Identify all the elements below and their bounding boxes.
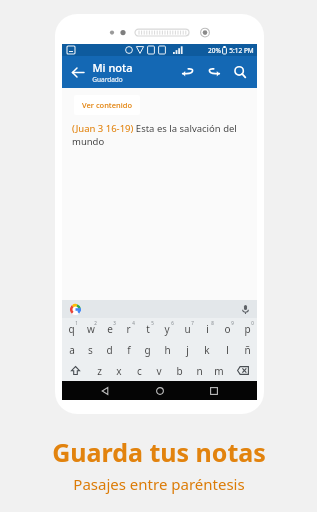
staticText: w (87, 322, 95, 336)
button[interactable]: 2 (81, 318, 100, 339)
button[interactable]: l (217, 339, 237, 360)
staticText: p (244, 322, 251, 336)
staticText: t (146, 322, 150, 336)
staticText: s (88, 343, 93, 357)
staticText: 6 (171, 320, 174, 326)
button[interactable]: Shift (62, 360, 89, 381)
staticText: o (224, 322, 231, 336)
button[interactable]: a (62, 339, 81, 360)
button[interactable]: k (197, 339, 217, 360)
button[interactable]: 0 (237, 318, 257, 339)
button[interactable]: j (177, 339, 197, 360)
staticText: 9 (231, 320, 234, 326)
button[interactable]: Back (62, 56, 92, 88)
button[interactable]: 1 (62, 318, 81, 339)
staticText: 5:12 PM (229, 46, 254, 55)
staticText: f (127, 343, 131, 357)
staticText: k (204, 343, 210, 357)
button[interactable]: 3 (100, 318, 119, 339)
staticText: n (196, 364, 203, 378)
button[interactable]: b (169, 360, 189, 381)
staticText: v (156, 364, 162, 378)
staticText: l (226, 343, 229, 357)
button[interactable]: Backspace (229, 360, 257, 381)
staticText: g (144, 343, 151, 357)
staticText: x (116, 364, 122, 378)
button[interactable]: s (81, 339, 100, 360)
button[interactable]: z (89, 360, 109, 381)
button[interactable]: n (189, 360, 209, 381)
button[interactable]: g (138, 339, 157, 360)
button[interactable]: f (119, 339, 138, 360)
staticText: Mi nota (92, 60, 133, 75)
button[interactable]: ñ (237, 339, 257, 360)
button[interactable]: 4 (119, 318, 138, 339)
staticText: 2 (94, 320, 97, 326)
button[interactable]: 8 (197, 318, 217, 339)
staticText: i (206, 322, 209, 336)
staticText: Ver contenido (82, 100, 132, 110)
staticText: ñ (244, 343, 251, 357)
staticText: Guarda tus notas (52, 435, 266, 469)
button[interactable]: v (149, 360, 169, 381)
button[interactable]: d (100, 339, 119, 360)
button[interactable]: m (209, 360, 229, 381)
button[interactable]: Back (94, 381, 116, 400)
button[interactable]: Ver contenido (74, 95, 140, 115)
staticText: j (186, 343, 189, 357)
staticText: b (176, 364, 183, 378)
button[interactable]: Recents (203, 381, 225, 400)
staticText: z (97, 364, 102, 378)
staticText: 7 (191, 320, 194, 326)
staticText: 20% (208, 46, 221, 55)
button[interactable]: 9 (217, 318, 237, 339)
staticText: h (164, 343, 171, 357)
button[interactable]: h (157, 339, 177, 360)
button[interactable]: x (109, 360, 129, 381)
staticText: d (106, 343, 113, 357)
staticText: 3 (113, 320, 116, 326)
staticText: 0 (251, 320, 254, 326)
button[interactable]: Undo (175, 59, 201, 85)
button[interactable]: Search (227, 59, 253, 85)
staticText: m (214, 364, 224, 378)
staticText: Guardado (92, 75, 123, 84)
staticText: q (68, 322, 75, 336)
button[interactable]: c (129, 360, 149, 381)
staticText: u (184, 322, 191, 336)
staticText: c (137, 364, 142, 378)
staticText: 1 (75, 320, 78, 326)
staticText: (Juan 3 16-19) Esta es la salvación del … (72, 122, 247, 148)
staticText: a (69, 343, 75, 357)
button[interactable]: Voice input (239, 303, 251, 315)
staticText: Pasajes entre paréntesis (73, 474, 245, 494)
staticText: r (126, 322, 131, 336)
staticText: e (107, 322, 113, 336)
button[interactable]: Home (149, 381, 171, 400)
button[interactable]: 6 (157, 318, 177, 339)
staticText: 4 (132, 320, 135, 326)
button[interactable]: 5 (138, 318, 157, 339)
staticText: 5 (151, 320, 154, 326)
button[interactable]: Redo (201, 59, 227, 85)
staticText: y (164, 322, 170, 336)
staticText: 8 (211, 320, 214, 326)
button[interactable]: 7 (177, 318, 197, 339)
